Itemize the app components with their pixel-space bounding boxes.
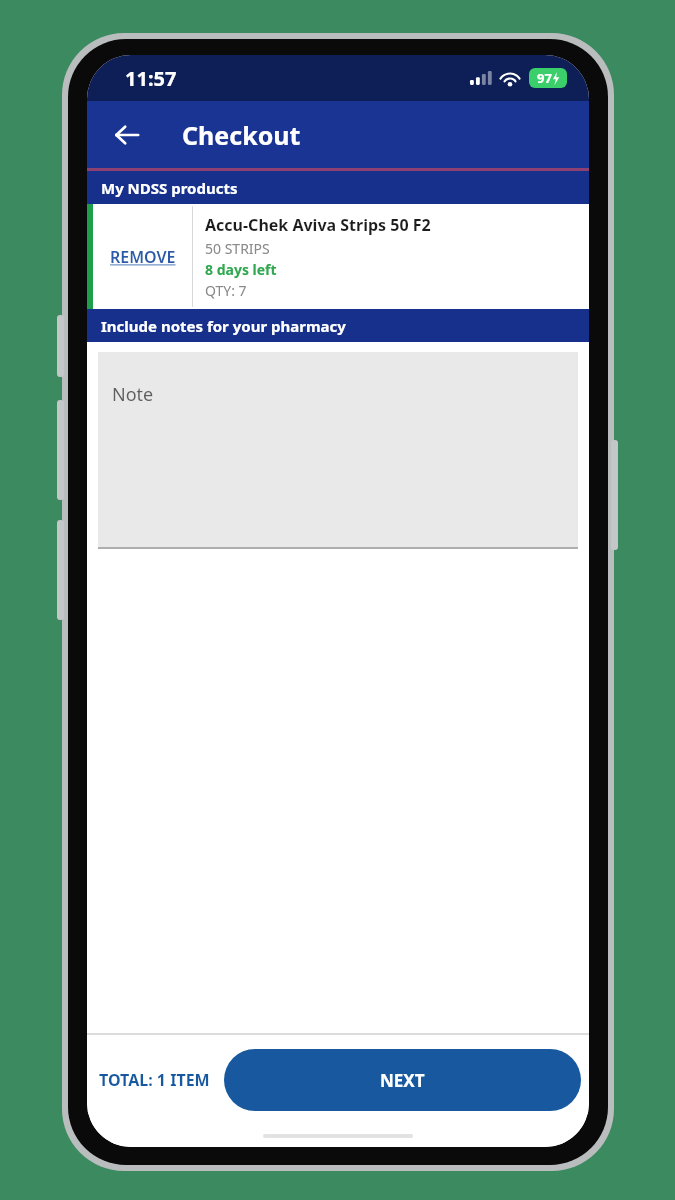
staticText: Note [112, 382, 154, 407]
staticText: My NDSS products [101, 178, 238, 198]
staticText: 8 days left [205, 260, 277, 279]
button[interactable]: REMOVE [87, 204, 589, 309]
staticText: NEXT [380, 1069, 425, 1092]
staticText: REMOVE [110, 246, 176, 268]
button[interactable]: TOTAL: 1 ITEM [99, 1069, 210, 1091]
staticText: 50 STRIPS [205, 239, 270, 258]
staticText: Checkout [182, 118, 301, 152]
button[interactable]: NEXT [224, 1049, 581, 1111]
staticText: QTY: 7 [205, 281, 247, 300]
staticText: 11:57 [125, 65, 177, 92]
staticText: Accu-Chek Aviva Strips 50 F2 [205, 214, 431, 236]
staticText: Include notes for your pharmacy [101, 316, 346, 336]
button[interactable]: Note [98, 352, 578, 547]
button[interactable]: Back [101, 109, 153, 161]
staticText: 97 [537, 69, 552, 87]
